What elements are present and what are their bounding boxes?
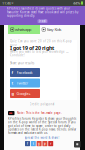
staticText: g [11,91,14,96]
staticText: Quiz: Can you score 20 of 20 on this K-p… [10,39,72,47]
staticText: g [38,142,40,145]
staticText: Install [38,19,46,23]
staticText: 11:40 [2,0,11,6]
staticText: Twitter [16,80,28,86]
button[interactable]: Share on Google Plus [37,141,42,146]
button[interactable]: Share on Facebook [25,141,30,146]
button[interactable]: Share on Pinterest [42,141,47,146]
button[interactable]: Share on Reddit [48,141,53,146]
button[interactable]: Install [37,19,47,23]
staticText: Facebook [16,70,32,75]
staticText: Note: This is the fan-made page. [17,111,62,115]
staticText: Share your results [10,61,34,65]
staticText: Credit: polygonal [29,102,54,106]
staticText: t [11,80,13,86]
staticText: whatsapp [15,27,31,32]
button[interactable]: Share on Twitter [31,141,36,146]
staticText: Google+ [16,91,30,96]
staticText: Stay Kids [47,27,62,32]
button[interactable]: Stay Kids [42,25,78,34]
button[interactable]: f [10,68,40,77]
staticText: KProfiles launched its own quotes with y… [7,7,78,17]
staticText: r [50,142,51,145]
staticText: When you want to test your knowledge — C… [10,50,69,57]
button[interactable]: t [10,78,40,87]
button[interactable]: whatsapp [8,25,40,34]
button[interactable]: g [10,89,40,98]
staticText: f [27,142,28,145]
staticText: p [44,142,46,145]
staticText: I got 19 of 20 right [10,44,54,52]
staticText: Spread the word & share! [24,136,59,139]
staticText: f [11,70,13,75]
staticText: ▾ [12,1,13,4]
staticText: 44% [73,0,80,6]
staticText: t [33,142,34,145]
button[interactable]: Scroll to top [74,141,80,147]
staticText: KProfiles forum: Register & share your t… [8,117,76,135]
